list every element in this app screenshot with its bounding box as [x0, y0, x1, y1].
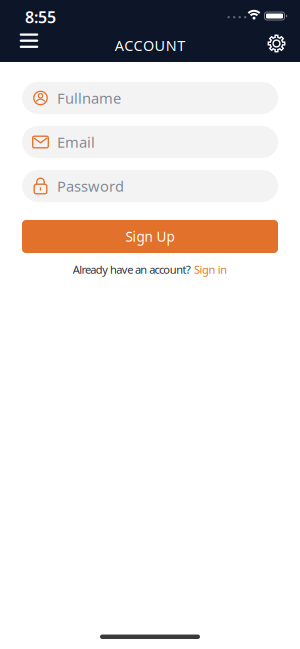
staticText: 8:55: [25, 6, 56, 28]
staticText: Email: [57, 132, 95, 152]
staticText: Password: [57, 176, 124, 196]
staticText: Fullname: [57, 88, 121, 108]
button[interactable]: Settings: [261, 28, 291, 58]
button[interactable]: Fullname: [22, 82, 278, 114]
button[interactable]: Sign Up: [22, 220, 278, 253]
staticText: Sign in: [194, 262, 227, 277]
staticText: Already have an account?: [73, 262, 191, 277]
button[interactable]: Email: [22, 126, 278, 158]
staticText: Sign Up: [125, 227, 174, 246]
button[interactable]: Sign in: [194, 262, 227, 277]
staticText: ACCOUNT: [115, 35, 185, 55]
button[interactable]: Password: [22, 170, 278, 202]
button[interactable]: Menu: [12, 26, 46, 56]
